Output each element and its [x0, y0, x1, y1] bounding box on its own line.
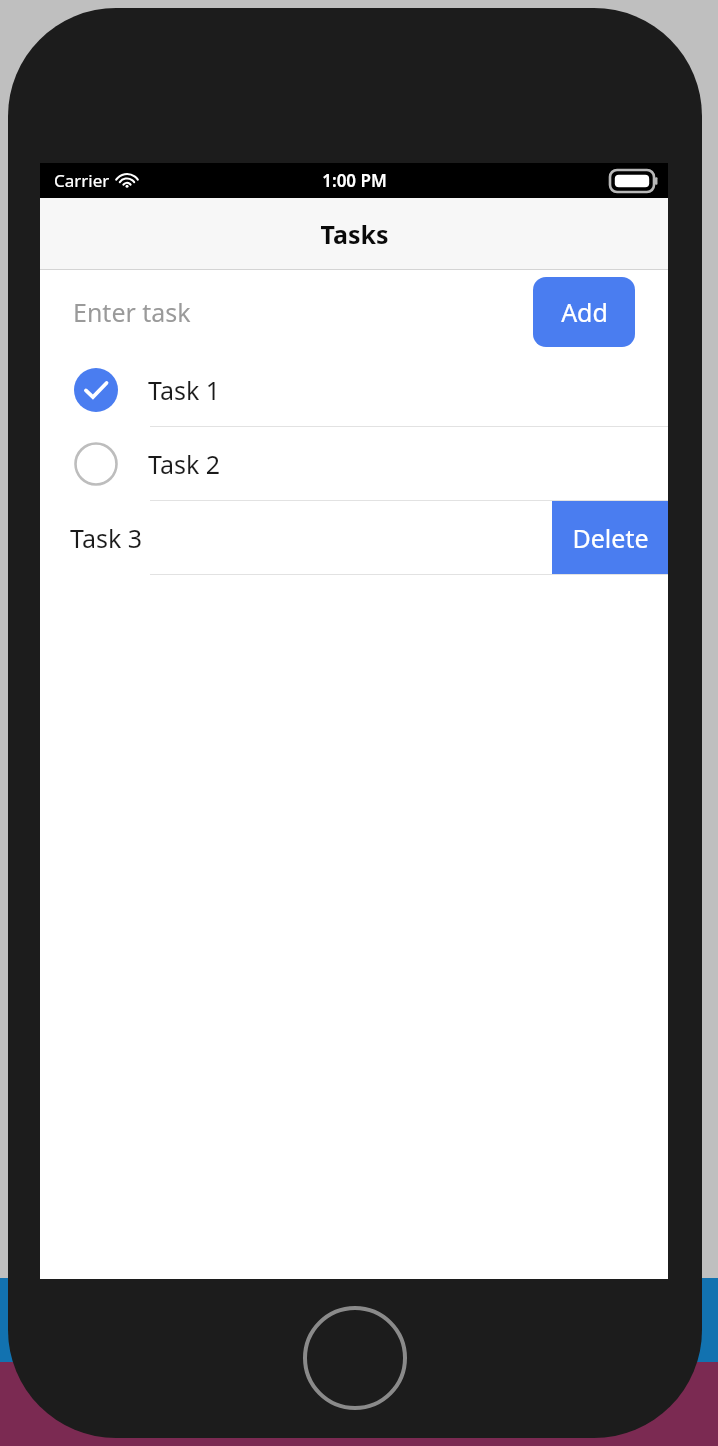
- button[interactable]: Mark complete: [74, 442, 118, 486]
- staticText: Task 2: [148, 447, 221, 481]
- staticText: Task 1: [148, 373, 221, 407]
- staticText: Carrier: [54, 169, 110, 192]
- button[interactable]: Add: [533, 277, 635, 347]
- button[interactable]: Task 3: [8, 501, 143, 574]
- button[interactable]: Home: [303, 1306, 407, 1410]
- button[interactable]: Mark incomplete: [40, 353, 668, 426]
- staticText: Tasks: [320, 217, 389, 251]
- staticText: Enter task: [73, 295, 191, 329]
- button[interactable]: Mark incomplete: [74, 368, 118, 412]
- button[interactable]: Delete: [552, 501, 668, 574]
- staticText: 1:00 PM: [322, 169, 387, 192]
- button[interactable]: Enter task: [73, 282, 493, 342]
- staticText: Delete: [572, 521, 649, 555]
- staticText: Task 3: [70, 521, 143, 555]
- staticText: Add: [561, 295, 608, 329]
- button[interactable]: Mark complete: [40, 427, 668, 500]
